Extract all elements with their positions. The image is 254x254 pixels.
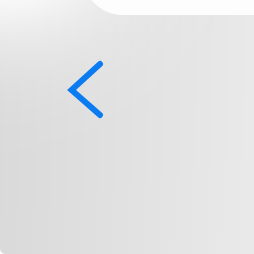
button[interactable]: Back <box>66 58 110 102</box>
